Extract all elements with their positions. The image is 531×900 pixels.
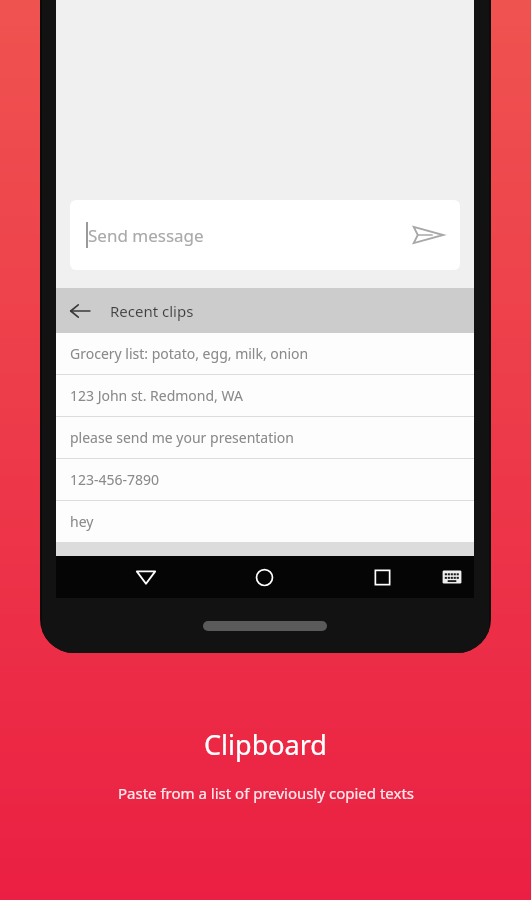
staticText: hey	[70, 512, 94, 531]
button[interactable]: Recents	[360, 556, 404, 598]
button[interactable]: Send message	[70, 200, 460, 270]
button[interactable]: please send me your presentation	[56, 417, 474, 458]
button[interactable]: 123-456-7890	[56, 459, 474, 500]
button[interactable]: hey	[56, 501, 474, 542]
staticText: please send me your presentation	[70, 428, 294, 447]
button[interactable]: Grocery list: potato, egg, milk, onion	[56, 333, 474, 374]
button[interactable]: Back	[56, 288, 474, 333]
staticText: 123-456-7890	[70, 470, 160, 489]
button[interactable]: Back	[64, 295, 96, 327]
staticText: Grocery list: potato, egg, milk, onion	[70, 344, 309, 363]
button[interactable]: 123 John st. Redmond, WA	[56, 375, 474, 416]
staticText: Send message	[88, 224, 204, 247]
button[interactable]: Switch keyboard	[430, 556, 474, 598]
button[interactable]: Send	[404, 211, 452, 259]
staticText: Recent clips	[110, 301, 194, 321]
staticText: Paste from a list of previously copied t…	[118, 783, 414, 803]
staticText: 123 John st. Redmond, WA	[70, 386, 243, 405]
button[interactable]: Back	[124, 556, 168, 598]
button[interactable]: Home	[242, 556, 286, 598]
staticText: Clipboard	[204, 726, 327, 763]
